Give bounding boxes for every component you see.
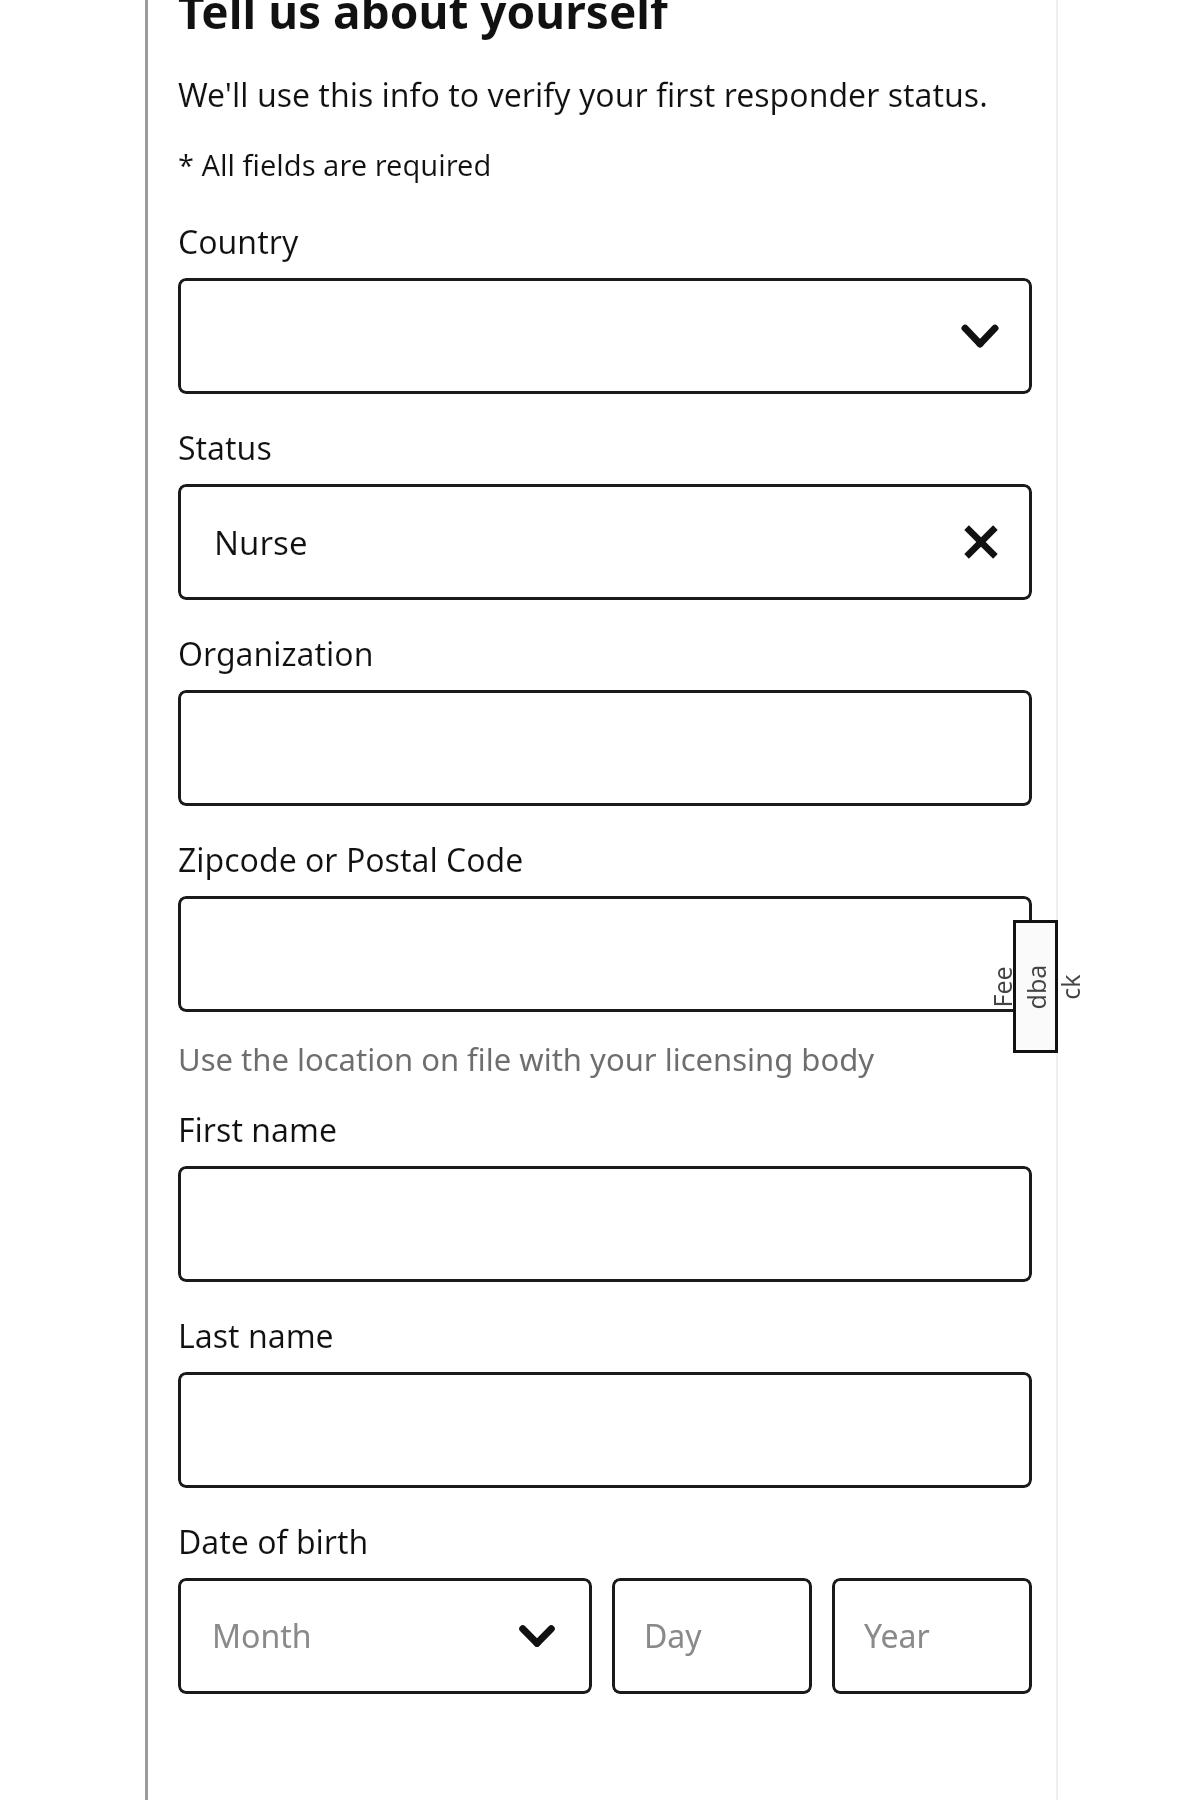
button[interactable]: Zipcode or Postal Code <box>178 896 1032 1012</box>
staticText: Use the location on file with your licen… <box>178 1038 875 1080</box>
staticText: * All fields are required <box>178 145 492 184</box>
button[interactable]: Feedback <box>1013 920 1058 1053</box>
staticText: Year <box>864 1614 930 1658</box>
staticText: Status <box>178 426 272 470</box>
staticText: Tell us about yourself <box>178 0 668 43</box>
button[interactable]: Day <box>612 1578 812 1694</box>
button[interactable]: Clear status <box>954 515 1008 569</box>
button[interactable]: Year <box>832 1578 1032 1694</box>
button[interactable]: First name <box>178 1166 1032 1282</box>
button[interactable]: Status, Nurse <box>178 484 1032 600</box>
staticText: Country <box>178 220 299 264</box>
staticText: Zipcode or Postal Code <box>178 838 524 882</box>
button[interactable]: Month, select <box>178 1578 592 1694</box>
staticText: Month <box>212 1614 312 1658</box>
staticText: Date of birth <box>178 1520 369 1564</box>
staticText: First name <box>178 1108 337 1152</box>
staticText: We'll use this info to verify your first… <box>178 73 988 117</box>
button[interactable]: Country, select <box>178 278 1032 394</box>
button[interactable]: Organization <box>178 690 1032 806</box>
staticText: Day <box>644 1614 702 1658</box>
staticText: Organization <box>178 632 374 676</box>
staticText: Last name <box>178 1314 334 1358</box>
staticText: Nurse <box>214 520 308 565</box>
button[interactable]: Last name <box>178 1372 1032 1488</box>
staticText: Feedback <box>984 964 1086 1009</box>
